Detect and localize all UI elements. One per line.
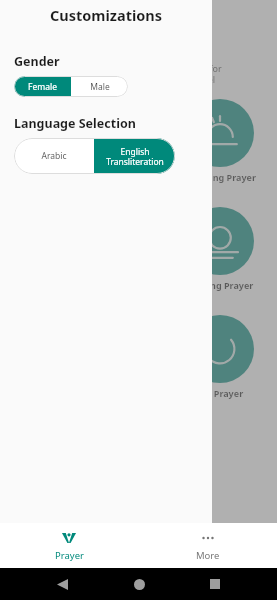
staticText: Gender: [14, 53, 60, 70]
staticText: Customizations: [50, 5, 163, 25]
other: Recents: [200, 569, 230, 599]
staticText: Female: [28, 81, 57, 93]
button[interactable]: English Transliteration: [94, 138, 175, 174]
staticText: English Transliteration: [106, 146, 164, 167]
staticText: Male: [90, 81, 110, 93]
staticText: Arabic: [41, 150, 67, 162]
staticText: Night Prayer: [186, 387, 244, 399]
staticText: Dua for Travel: [190, 62, 222, 85]
staticText: More: [196, 549, 220, 562]
button[interactable]: Arabic: [14, 138, 94, 174]
button[interactable]: Male: [71, 76, 128, 97]
button[interactable]: Female: [14, 76, 71, 97]
staticText: Language Selection: [14, 115, 136, 132]
button[interactable]: Prayer: [0, 523, 138, 568]
button[interactable]: More: [138, 523, 277, 568]
staticText: Prayer: [55, 549, 84, 562]
other: Back: [47, 569, 77, 599]
staticText: Morning Prayer: [186, 171, 256, 183]
other: Home: [124, 569, 154, 599]
staticText: Evening Prayer: [186, 279, 254, 291]
